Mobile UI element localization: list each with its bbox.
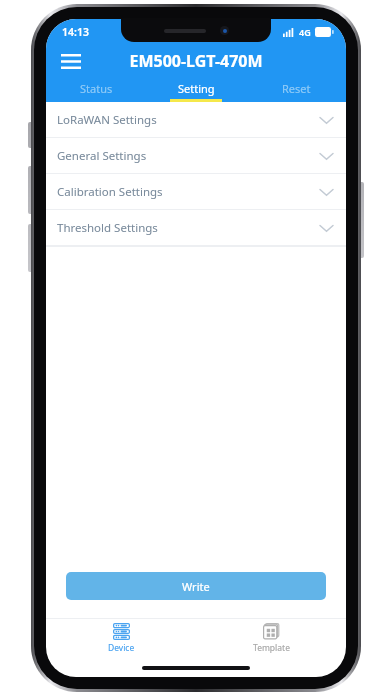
button[interactable]: General Settings [46,138,346,173]
button[interactable]: Open navigation menu [56,46,86,76]
staticText: 4G [299,26,311,38]
staticText: LoRaWAN Settings [57,112,320,128]
staticText: Calibration Settings [57,184,320,200]
button[interactable]: Device [46,619,196,657]
staticText: Device [108,642,135,654]
staticText: Write [182,579,210,594]
button[interactable]: Template [196,619,346,657]
staticText: Setting [178,81,215,96]
staticText: Threshold Settings [57,220,320,236]
button[interactable]: Calibration Settings [46,174,346,209]
staticText: Template [253,642,290,654]
staticText: Status [80,81,113,96]
button[interactable]: Status [46,78,146,102]
button[interactable]: Write [66,572,326,600]
staticText: 14:13 [62,25,89,39]
button[interactable]: LoRaWAN Settings [46,102,346,137]
staticText: EM500-LGT-470M [129,50,263,72]
button[interactable]: Setting [146,78,246,102]
button[interactable]: Reset [246,78,346,102]
button[interactable]: Threshold Settings [46,210,346,245]
staticText: Reset [282,81,311,96]
staticText: General Settings [57,148,320,164]
